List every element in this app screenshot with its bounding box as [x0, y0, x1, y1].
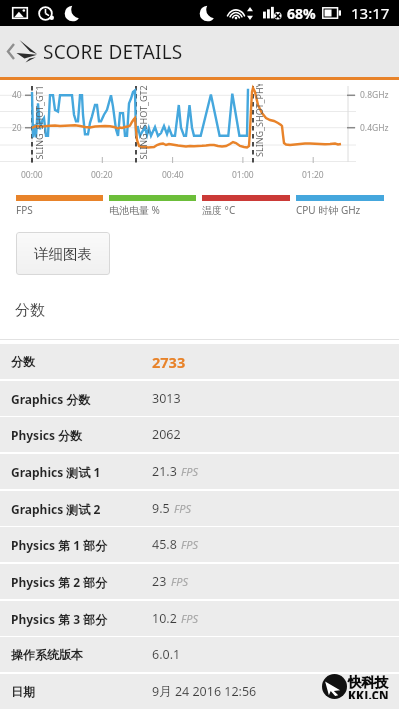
staticText: 68%: [287, 4, 316, 23]
staticText: 温度 °C: [202, 203, 236, 217]
staticText: 0.4GHz: [360, 122, 389, 134]
staticText: 13:17: [351, 3, 390, 23]
staticText: Physics 第 2 部分: [11, 574, 108, 590]
staticText: FPS: [171, 574, 189, 589]
staticText: 详细图表: [34, 245, 92, 263]
staticText: 01:00: [232, 169, 254, 181]
staticText: 6.0.1: [152, 646, 181, 663]
staticText: FPS: [16, 203, 33, 217]
staticText: 分数: [15, 301, 45, 320]
staticText: Graphics 测试 1: [11, 464, 101, 480]
staticText: FPS: [174, 501, 192, 516]
staticText: Physics 第 3 部分: [11, 611, 108, 627]
button[interactable]: Graphics 分数: [0, 381, 399, 416]
staticText: SLING_SHOT_GT2: [136, 84, 148, 159]
button[interactable]: Physics 分数: [0, 417, 399, 452]
staticText: 3013: [152, 390, 181, 407]
staticText: 23: [152, 573, 167, 590]
staticText: FPS: [181, 611, 199, 626]
staticText: CPU 时钟 GHz: [296, 203, 361, 217]
staticText: 2062: [152, 426, 181, 443]
staticText: 9.5: [152, 500, 170, 517]
staticText: 20: [12, 122, 22, 134]
staticText: 40: [12, 89, 22, 101]
staticText: 电池电量 %: [109, 203, 160, 217]
staticText: 分数: [11, 354, 35, 369]
staticText: 45.8: [152, 536, 177, 553]
button[interactable]: Physics 第 2 部分: [0, 564, 399, 599]
button[interactable]: 分数: [0, 344, 399, 379]
staticText: 日期: [11, 684, 35, 699]
staticText: SLING_SHOT_PHYS: [253, 84, 265, 157]
staticText: 操作系统版本: [11, 647, 83, 662]
staticText: 00:00: [21, 169, 43, 181]
button[interactable]: 详细图表: [16, 232, 110, 275]
staticText: Graphics 分数: [11, 391, 91, 407]
staticText: 快科技: [348, 674, 389, 691]
button[interactable]: Physics 第 1 部分: [0, 527, 399, 562]
staticText: FPS: [181, 464, 199, 479]
staticText: 00:20: [91, 169, 113, 181]
staticText: 01:20: [302, 169, 324, 181]
button[interactable]: 操作系统版本: [0, 637, 399, 672]
button[interactable]: Physics 第 3 部分: [0, 601, 399, 636]
staticText: Graphics 测试 2: [11, 501, 101, 517]
button[interactable]: Back: [0, 26, 42, 77]
staticText: 00:40: [162, 169, 184, 181]
staticText: 9月 24 2016 12:56: [152, 683, 257, 700]
staticText: 10.2: [152, 610, 177, 627]
staticText: SCORE DETAILS: [43, 39, 183, 65]
staticText: Physics 分数: [11, 427, 83, 443]
staticText: SLING_SHOT_GT1: [32, 84, 44, 159]
staticText: KKJ.CN: [348, 688, 389, 699]
staticText: 2733: [152, 352, 186, 372]
button[interactable]: 日期: [0, 674, 399, 709]
button[interactable]: Graphics 测试 1: [0, 454, 399, 489]
staticText: 21.3: [152, 463, 177, 480]
button[interactable]: Graphics 测试 2: [0, 491, 399, 526]
staticText: Physics 第 1 部分: [11, 537, 108, 553]
staticText: FPS: [181, 537, 199, 552]
staticText: 0.8GHz: [360, 89, 389, 101]
